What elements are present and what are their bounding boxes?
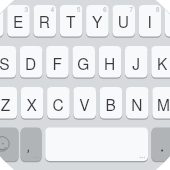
button[interactable]: Keyboard [0,0,170,170]
